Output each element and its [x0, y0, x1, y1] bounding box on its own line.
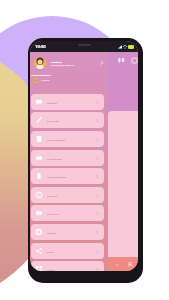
- button[interactable]: Logout: [31, 261, 104, 271]
- staticText: Mobile Recharge: [47, 175, 95, 178]
- button[interactable]: sweeting: [30, 54, 108, 72]
- staticText: Message: [47, 101, 95, 104]
- button[interactable]: Mobile Recharge: [31, 168, 104, 184]
- button[interactable]: Settings: [31, 224, 104, 240]
- staticText: Logout: [47, 268, 95, 271]
- staticText: My Transactions: [47, 138, 95, 141]
- staticText: Settings: [47, 231, 95, 234]
- staticText: Account Balance: [31, 73, 51, 76]
- button[interactable]: Edit Profile: [31, 112, 104, 128]
- staticText: sweeting@gmail.com: [51, 64, 75, 67]
- button[interactable]: Home: [112, 260, 121, 269]
- staticText: Edit Profile: [47, 119, 95, 122]
- staticText: Share: [47, 250, 95, 253]
- button[interactable]: Share: [31, 243, 104, 259]
- staticText: About Us: [47, 194, 95, 197]
- staticText: 10:50: [35, 44, 46, 50]
- staticText: sweeting: [51, 60, 62, 63]
- button[interactable]: Message: [31, 94, 104, 110]
- other: Wallet: [132, 58, 137, 63]
- staticText: $ 0: [118, 57, 125, 63]
- button[interactable]: About Us: [31, 187, 104, 203]
- button[interactable]: Contact Us: [31, 205, 104, 221]
- staticText: 0 Dollar: [41, 79, 50, 82]
- button[interactable]: Call Requests: [31, 150, 104, 166]
- button[interactable]: Profile: [125, 260, 134, 269]
- staticText: Call Requests: [47, 157, 95, 160]
- button[interactable]: My Transactions: [31, 131, 104, 147]
- staticText: Contact Us: [47, 212, 95, 215]
